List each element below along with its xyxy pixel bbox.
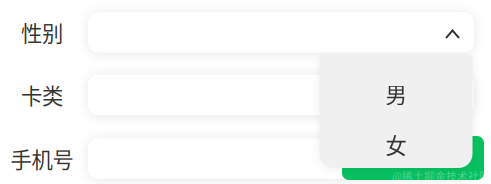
staticText: @稀土掘金技术社区 [392,168,490,183]
button[interactable]: 男 [319,68,472,119]
staticText: 女 [385,129,406,160]
staticText: 性别 [21,17,63,48]
button[interactable] [88,12,474,52]
staticText: 男 [385,78,406,109]
staticText: 卡类 [21,79,63,110]
button[interactable]: 女 [319,119,472,170]
button[interactable] [342,136,484,180]
staticText: 手机号 [10,143,73,174]
button[interactable] [88,74,474,115]
button[interactable] [88,138,474,179]
